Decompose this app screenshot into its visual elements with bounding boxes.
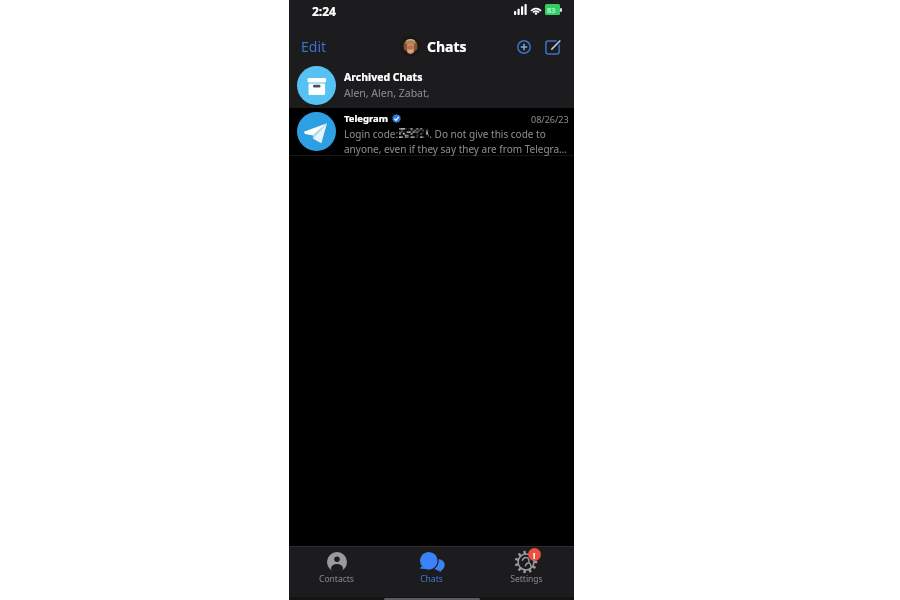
staticText: Archived Chats [344,70,423,84]
staticText: anyone, even if they say they are from T… [344,142,568,156]
staticText: 2:24 [312,3,336,19]
staticText: Login code: 12345. Do not give this code… [344,127,546,141]
button[interactable]: ! [479,547,574,585]
staticText: Telegram [344,112,389,125]
staticText: Alen, Alen, Zabat, [344,86,430,100]
button[interactable]: Compose [541,36,563,58]
staticText: Chats [427,37,467,56]
staticText: Chats [420,573,443,584]
staticText: 08/26/23 [531,113,569,125]
button[interactable]: Edit [289,32,335,61]
button[interactable]: Contacts [289,547,384,585]
staticText: 83 [547,5,556,15]
button[interactable]: Archived Chats [289,62,574,108]
button[interactable]: Telegram [289,108,574,156]
button[interactable]: Chats [384,547,479,585]
staticText: ! [533,549,536,561]
staticText: Settings [510,573,543,584]
button[interactable]: New story [513,36,535,58]
staticText: Contacts [319,573,354,584]
